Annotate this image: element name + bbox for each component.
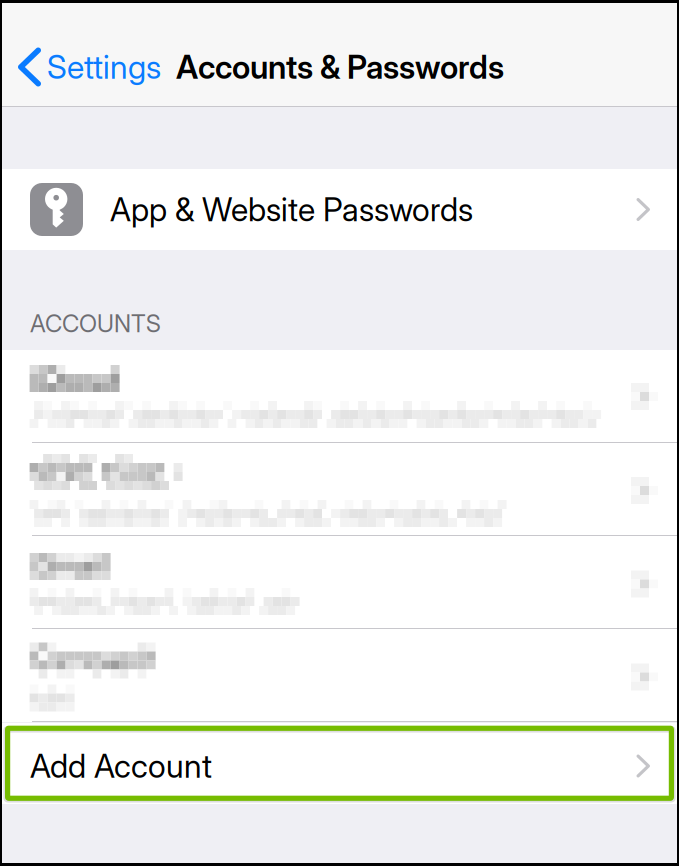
staticText: Add Account	[30, 747, 212, 785]
button[interactable]: Add Account	[2, 723, 677, 804]
staticText: Settings	[47, 48, 161, 86]
button[interactable]: Settings	[2, 36, 165, 98]
button[interactable]: App & Website Passwords	[2, 169, 677, 250]
button[interactable]: Comcast account	[2, 629, 677, 721]
button[interactable]: Work account	[2, 443, 677, 535]
button[interactable]: iCloud account	[2, 350, 677, 442]
staticText: Accounts & Passwords	[176, 48, 504, 86]
staticText: App & Website Passwords	[110, 190, 473, 229]
button[interactable]: Gmail account	[2, 536, 677, 628]
staticText: ACCOUNTS	[30, 309, 161, 338]
